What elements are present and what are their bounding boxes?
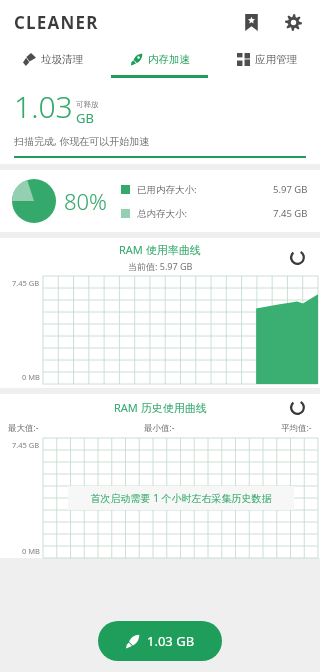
staticText: 扫描完成, 你现在可以开始加速 xyxy=(14,134,150,148)
staticText: 垃圾清理 xyxy=(41,53,83,66)
staticText: 总内存大小: xyxy=(137,207,188,220)
staticText: GB xyxy=(76,109,94,127)
staticText: 当前值: 5.97 GB xyxy=(128,260,193,272)
staticText: 首次启动需要 1 个小时左右采集历史数据 xyxy=(74,491,288,505)
button[interactable]: 内存加速 xyxy=(106,44,213,75)
button[interactable]: 应用管理 xyxy=(213,44,320,75)
button[interactable]: Refresh history xyxy=(284,394,310,420)
staticText: 内存加速 xyxy=(148,53,190,66)
staticText: RAM 使用率曲线 xyxy=(119,242,201,257)
staticText: 7.45 GB xyxy=(12,440,40,450)
staticText: 0 MB xyxy=(22,372,40,382)
staticText: 0 MB xyxy=(22,546,40,556)
staticText: RAM 历史使用曲线 xyxy=(114,400,207,415)
staticText: 80% xyxy=(64,186,107,216)
staticText: 5.97 GB xyxy=(273,183,308,196)
staticText: 平均值:- xyxy=(281,422,312,434)
button[interactable]: Refresh xyxy=(284,244,310,270)
staticText: 1.03 xyxy=(14,86,73,127)
staticText: 1.03 GB xyxy=(147,632,195,650)
staticText: 最小值:- xyxy=(144,422,175,434)
button[interactable]: 1.03 GB xyxy=(98,621,222,661)
staticText: 应用管理 xyxy=(255,53,297,66)
button[interactable]: 垃圾清理 xyxy=(0,44,106,75)
staticText: 最大值:- xyxy=(8,422,39,434)
staticText: CLEANER xyxy=(14,11,99,34)
staticText: 7.45 GB xyxy=(12,278,40,288)
button[interactable]: Bookmark xyxy=(236,7,266,37)
button[interactable]: Settings xyxy=(278,7,308,37)
staticText: 可释放 xyxy=(76,100,99,109)
staticText: 已用内存大小: xyxy=(137,183,197,196)
staticText: 7.45 GB xyxy=(273,207,308,220)
